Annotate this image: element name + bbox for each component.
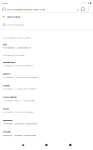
staticText: 中文维基百科，自由的百科全书 (3, 47, 31, 49)
staticText: Wikipedia, wolna encyklopedia (3, 111, 34, 113)
button[interactable]: Deutsch (0, 70, 93, 81)
staticText: Search for a language (7, 24, 24, 26)
staticText: 10:34 (2, 1, 7, 5)
button[interactable]: Русский (0, 128, 93, 139)
staticText: Azərbaycanca (3, 61, 15, 64)
staticText: + (76, 6, 78, 12)
staticText: ⋮ (86, 7, 90, 12)
button[interactable]: Polski (0, 104, 93, 116)
staticText: Wikipedia, den frie encyklopedi (3, 99, 35, 102)
button[interactable]: Site information (2, 8, 5, 11)
button[interactable]: Azərbaycanca (0, 58, 93, 70)
staticText: Википедия, свободная энциклопедия (3, 134, 36, 136)
staticText: Wikipédia, a szabad enciklopédia (3, 87, 36, 90)
button[interactable]: New tab (76, 6, 78, 12)
staticText: Уикипедия, свободната енциклопедия (3, 122, 37, 125)
staticText: 中文 (3, 43, 7, 46)
button[interactable]: Close (2, 15, 4, 18)
button[interactable]: Recent apps (69, 144, 71, 146)
staticText: OTHER LANGUAGES (3, 54, 24, 57)
staticText: SUGGESTED LANGUAGES (3, 36, 30, 39)
staticText: Languages (7, 15, 20, 18)
staticText: Magyar (3, 84, 10, 87)
staticText: ✕ (2, 15, 4, 18)
button[interactable]: Back (22, 143, 24, 147)
button[interactable]: Български (0, 116, 93, 128)
staticText: Vikipediya, azad ensiklopediya (3, 64, 33, 67)
staticText: Norsk bokmål (3, 96, 17, 98)
button[interactable]: Home (45, 144, 48, 146)
button[interactable]: Norsk bokmål (0, 93, 93, 104)
staticText: en.m.wikipedia.org/wiki/Vanilla_Sky (7, 8, 45, 11)
staticText: Deutsch (3, 72, 10, 75)
button[interactable]: Switch tabs (78, 8, 84, 11)
staticText: ◀ (22, 143, 24, 147)
staticText: Русский (3, 130, 10, 133)
button[interactable]: More options (84, 7, 90, 12)
staticText: ⋯ ⌃ ▾ ▮ (82, 2, 91, 4)
staticText: Wikipedia – Die freie Enzyklopädie (3, 76, 38, 78)
staticText: Polski (3, 107, 9, 110)
button[interactable]: Magyar (0, 81, 93, 93)
button[interactable]: 中文 (0, 40, 93, 52)
staticText: Български (3, 119, 12, 122)
